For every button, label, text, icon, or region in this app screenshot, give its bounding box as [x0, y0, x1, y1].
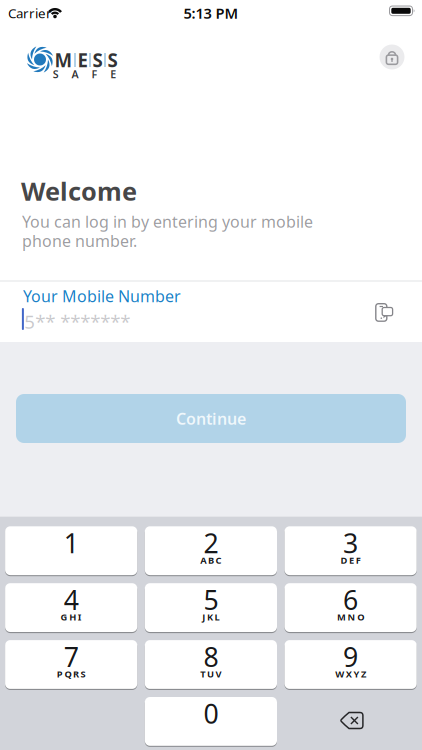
staticText: Your Mobile Number: [23, 285, 181, 307]
staticText: TUV: [200, 668, 221, 680]
staticText: A: [72, 67, 79, 81]
staticText: You can log in by entering your mobile p…: [22, 211, 313, 251]
button[interactable]: 2: [145, 526, 277, 576]
staticText: ABC: [200, 554, 221, 566]
staticText: 6: [343, 582, 358, 617]
staticText: PQRS: [57, 668, 86, 680]
staticText: 5** *******: [24, 309, 130, 334]
button[interactable]: Security: [379, 44, 404, 69]
staticText: 5: [203, 582, 218, 617]
button[interactable]: Autofill from SMS: [375, 302, 394, 320]
staticText: 4: [64, 582, 79, 617]
staticText: Continue: [176, 408, 246, 429]
staticText: 0: [203, 696, 218, 731]
button[interactable]: 6: [284, 583, 417, 633]
button[interactable]: 3: [284, 526, 417, 576]
button[interactable]: Delete: [322, 696, 382, 744]
staticText: E: [110, 67, 116, 81]
staticText: 1: [64, 525, 79, 560]
button[interactable]: 8: [145, 639, 277, 689]
button[interactable]: 0: [145, 696, 277, 746]
staticText: Welcome: [21, 174, 137, 208]
staticText: S: [107, 48, 117, 72]
staticText: S: [92, 48, 102, 72]
staticText: M: [54, 48, 72, 72]
staticText: Carrier: [8, 4, 52, 22]
staticText: DEF: [340, 554, 361, 566]
button[interactable]: 4: [5, 583, 137, 633]
staticText: 7: [64, 639, 79, 674]
staticText: S: [53, 67, 59, 81]
button[interactable]: 7: [5, 639, 137, 689]
button[interactable]: 9: [284, 639, 417, 689]
staticText: WXYZ: [335, 668, 366, 680]
staticText: E: [77, 48, 87, 72]
staticText: MNO: [337, 611, 364, 623]
staticText: 8: [203, 639, 218, 674]
button[interactable]: 5: [145, 583, 277, 633]
button[interactable]: Your Mobile Number: [0, 282, 422, 342]
staticText: 2: [203, 525, 218, 560]
button[interactable]: 1: [5, 526, 137, 576]
staticText: GHI: [61, 611, 82, 623]
staticText: 9: [343, 639, 358, 674]
staticText: 3: [343, 525, 358, 560]
staticText: F: [91, 67, 97, 81]
staticText: 5:13 PM: [183, 3, 238, 23]
button[interactable]: Continue: [16, 394, 406, 443]
staticText: JKL: [202, 611, 219, 623]
